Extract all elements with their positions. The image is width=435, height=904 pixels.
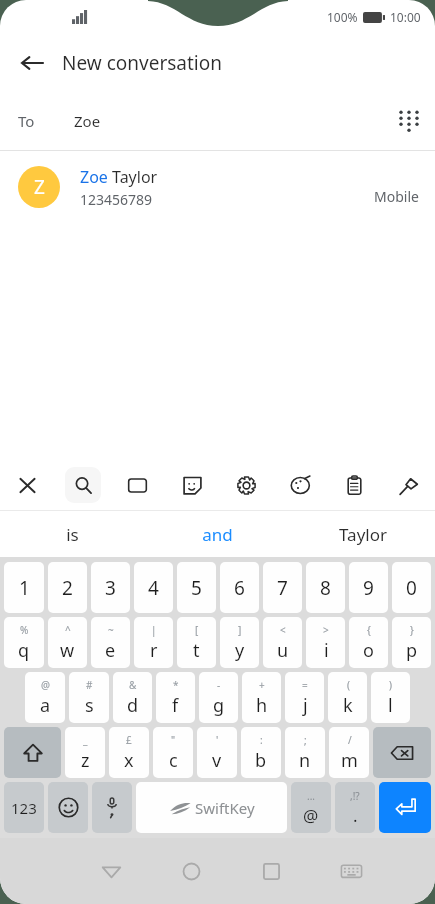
button[interactable]: Clipboard — [327, 460, 381, 510]
staticText: c — [169, 748, 178, 773]
button[interactable]: 5 — [177, 562, 216, 613]
staticText: f — [172, 693, 179, 718]
button[interactable]: " — [153, 727, 193, 778]
button[interactable]: ' — [197, 727, 237, 778]
button[interactable]: Pin — [381, 460, 435, 510]
button[interactable]: Z — [0, 151, 435, 223]
button[interactable]: _ — [65, 727, 105, 778]
button[interactable]: * — [156, 672, 195, 723]
staticText: Taylor — [339, 523, 387, 546]
staticText: ( — [347, 678, 350, 692]
button[interactable]: : — [241, 727, 281, 778]
button[interactable]: 2 — [48, 562, 87, 613]
button[interactable]: Recents — [231, 838, 311, 904]
button[interactable]: Taylor — [290, 511, 435, 557]
staticText: m — [341, 748, 358, 773]
button[interactable]: Shift — [4, 727, 61, 778]
button[interactable]: Close — [0, 460, 55, 510]
staticText: ,!? — [350, 789, 360, 803]
button[interactable]: > — [306, 617, 345, 668]
button[interactable]: ) — [371, 672, 410, 723]
button[interactable]: ( — [328, 672, 367, 723]
button[interactable]: Back — [71, 838, 151, 904]
button[interactable]: Voice input — [92, 782, 132, 833]
staticText: _ — [83, 733, 88, 747]
button[interactable]: Dialpad — [383, 95, 435, 147]
button[interactable]: 4 — [134, 562, 173, 613]
button[interactable]: | — [134, 617, 173, 668]
button[interactable]: ] — [220, 617, 259, 668]
staticText: < — [280, 623, 286, 637]
staticText: % — [20, 623, 29, 637]
button[interactable]: Themes — [273, 460, 327, 510]
staticText: i — [324, 638, 329, 663]
button[interactable]: Stickers — [165, 460, 219, 510]
button[interactable]: Home — [151, 838, 231, 904]
staticText: @ — [41, 678, 50, 692]
staticText: [ — [195, 623, 199, 637]
button[interactable]: [ — [177, 617, 216, 668]
staticText: n — [299, 748, 311, 773]
staticText: £ — [126, 733, 132, 747]
staticText: * — [173, 678, 179, 692]
staticText: o — [363, 638, 374, 663]
staticText: Mobile — [374, 187, 419, 206]
staticText: is — [66, 523, 79, 546]
button[interactable]: < — [263, 617, 302, 668]
button[interactable]: £ — [109, 727, 149, 778]
staticText: and — [202, 523, 233, 546]
button[interactable]: and — [145, 511, 290, 557]
button[interactable]: Emoji — [48, 782, 88, 833]
staticText: Zoe Taylor — [80, 166, 158, 188]
button[interactable]: ~ — [91, 617, 130, 668]
button[interactable]: = — [285, 672, 324, 723]
button[interactable]: Search — [55, 460, 110, 510]
button[interactable]: ... — [291, 782, 331, 833]
button[interactable]: % — [4, 617, 44, 668]
button[interactable]: Backspace — [373, 727, 431, 778]
button[interactable]: 1 — [4, 562, 44, 613]
staticText: 0 — [406, 575, 417, 601]
button[interactable]: GIF — [110, 460, 165, 510]
staticText: 8 — [320, 575, 331, 601]
button[interactable]: Hide keyboard — [311, 838, 391, 904]
button[interactable]: 6 — [220, 562, 259, 613]
button[interactable]: SwiftKey — [136, 782, 287, 833]
staticText: 4 — [148, 575, 159, 601]
staticText: > — [323, 623, 329, 637]
staticText: 123456789 — [80, 190, 153, 209]
staticText: v — [212, 748, 222, 773]
button[interactable]: ,!? — [335, 782, 375, 833]
button[interactable]: @ — [25, 672, 65, 723]
staticText: u — [277, 638, 289, 663]
button[interactable]: # — [69, 672, 109, 723]
button[interactable]: / — [329, 727, 369, 778]
staticText: w — [60, 638, 75, 663]
staticText: : — [260, 733, 263, 747]
staticText: a — [40, 693, 51, 718]
button[interactable]: & — [113, 672, 152, 723]
button[interactable]: ^ — [48, 617, 87, 668]
button[interactable]: 9 — [349, 562, 388, 613]
staticText: s — [85, 693, 94, 718]
staticText: ' — [216, 733, 219, 747]
button[interactable]: 8 — [306, 562, 345, 613]
staticText: 3 — [105, 575, 116, 601]
button[interactable]: 0 — [392, 562, 431, 613]
button[interactable]: ; — [285, 727, 325, 778]
button[interactable]: 3 — [91, 562, 130, 613]
button[interactable]: { — [349, 617, 388, 668]
staticText: p — [406, 638, 418, 663]
button[interactable]: Settings — [219, 460, 273, 510]
staticText: | — [151, 623, 157, 637]
button[interactable]: - — [199, 672, 238, 723]
button[interactable]: + — [242, 672, 281, 723]
button[interactable]: is — [0, 511, 145, 557]
button[interactable]: 123 — [4, 782, 44, 833]
button[interactable]: 7 — [263, 562, 302, 613]
staticText: ... — [307, 789, 316, 803]
button[interactable]: Back — [8, 39, 56, 87]
button[interactable]: Enter — [379, 782, 431, 833]
button[interactable]: } — [392, 617, 431, 668]
staticText: y — [235, 638, 245, 663]
